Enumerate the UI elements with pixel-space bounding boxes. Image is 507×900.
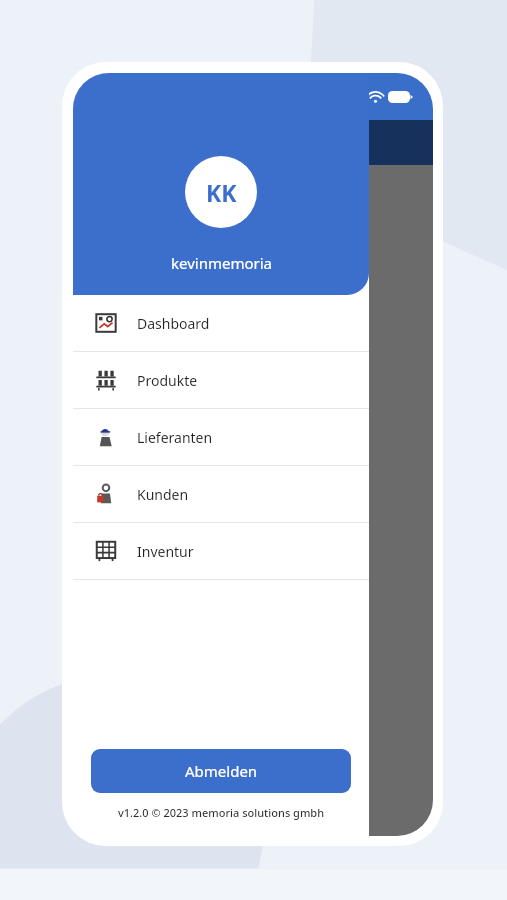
staticText: Abmelden xyxy=(185,761,258,781)
staticText: Lieferanten xyxy=(137,428,213,447)
staticText: v1.2.0 © 2023 memoria solutions gmbh xyxy=(73,805,369,820)
button[interactable]: Inventur xyxy=(73,523,369,579)
staticText: kevinmemoria xyxy=(171,253,272,273)
button[interactable]: Lieferanten xyxy=(73,409,369,465)
button[interactable]: Abmelden xyxy=(91,749,351,793)
button[interactable]: Produkte xyxy=(73,352,369,408)
button[interactable]: Dashboard xyxy=(73,295,369,351)
button[interactable]: Kunden xyxy=(73,466,369,522)
staticText: Kunden xyxy=(137,485,189,504)
staticText: Inventur xyxy=(137,542,194,561)
staticText: KK xyxy=(206,177,237,208)
staticText: Dashboard xyxy=(137,314,210,333)
staticText: Produkte xyxy=(137,371,198,390)
